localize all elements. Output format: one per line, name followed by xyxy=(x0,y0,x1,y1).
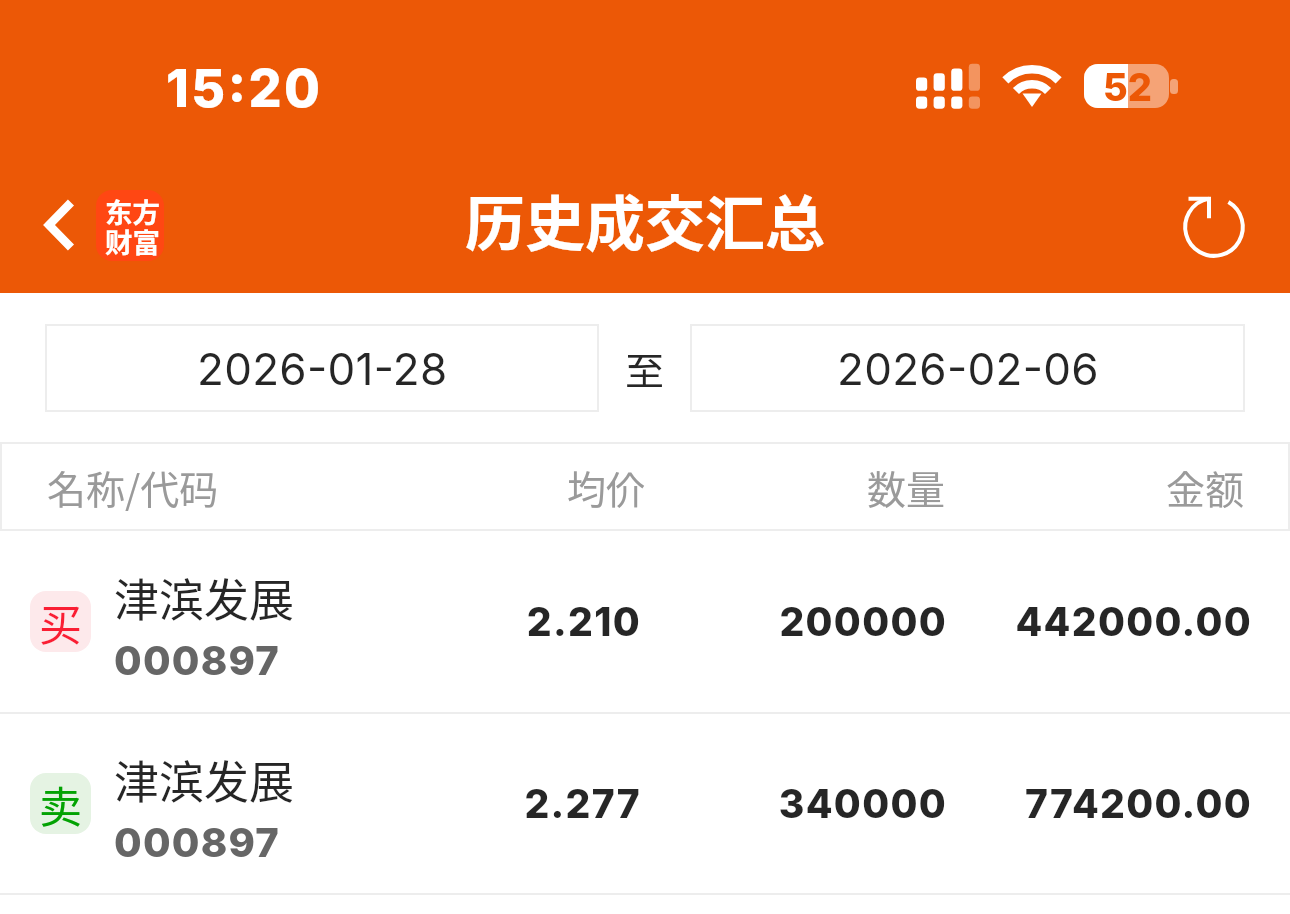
staticText: 774200.00 xyxy=(932,780,1252,827)
staticText: 至 xyxy=(625,340,665,396)
staticText: 2.210 xyxy=(321,598,641,645)
button[interactable]: 卖 xyxy=(0,714,1290,893)
staticText: 15:20 xyxy=(166,57,323,120)
button[interactable]: 刷新 xyxy=(1168,182,1260,272)
staticText: 津滨发展 xyxy=(114,565,295,630)
staticText: 2.277 xyxy=(321,780,641,827)
staticText: 东方 xyxy=(105,191,160,231)
staticText: 200000 xyxy=(627,598,947,645)
staticText: 2026-01-28 xyxy=(197,342,448,395)
staticText: 340000 xyxy=(627,780,947,827)
button[interactable]: 返回 xyxy=(14,171,104,281)
button[interactable]: 东方财富 xyxy=(96,190,164,261)
staticText: 数量 xyxy=(645,459,945,515)
button[interactable]: 2026-01-28 xyxy=(47,326,597,410)
staticText: 000897 xyxy=(114,818,280,866)
button[interactable]: 2026-02-06 xyxy=(692,326,1243,410)
staticText: 52 xyxy=(1103,64,1153,108)
staticText: 2026-02-06 xyxy=(837,342,1099,395)
staticText: 历史成交汇总 xyxy=(465,176,825,263)
button[interactable]: 买 xyxy=(0,531,1290,712)
staticText: 442000.00 xyxy=(932,598,1252,645)
staticText: 财富 xyxy=(105,221,160,261)
staticText: 000897 xyxy=(114,636,280,684)
staticText: 均价 xyxy=(345,459,645,515)
staticText: 买 xyxy=(39,591,82,652)
staticText: 金额 xyxy=(944,459,1244,515)
staticText: 卖 xyxy=(39,773,82,834)
staticText: 津滨发展 xyxy=(114,747,295,812)
staticText: 名称/代码 xyxy=(47,459,219,515)
